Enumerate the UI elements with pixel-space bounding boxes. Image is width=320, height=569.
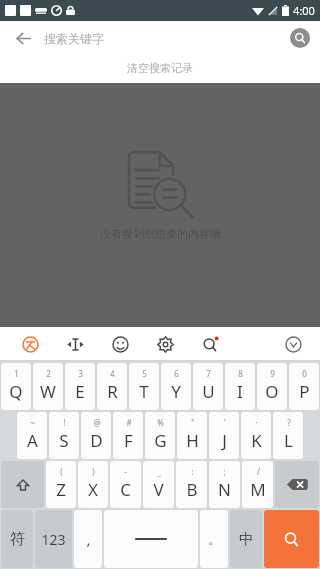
staticText: : [191,466,194,477]
button[interactable]: - [110,461,141,508]
button[interactable]: 8 [225,363,255,410]
button[interactable]: ~ [17,412,47,459]
button[interactable]: % [145,412,175,459]
staticText: " [191,417,195,428]
staticText: ) [92,466,95,477]
button[interactable]: 4 [97,363,127,410]
staticText: / [257,466,260,477]
button[interactable]: 搜索关键字 [44,21,290,55]
button[interactable]: ' [209,412,239,459]
staticText: L [284,429,293,452]
staticText: 7 [206,368,211,379]
staticText: 9 [270,368,275,379]
staticText: 。 [208,531,221,547]
staticText: ' [224,417,226,428]
staticText: X [88,478,98,501]
button[interactable]: / [242,461,273,508]
button[interactable]: ( [46,461,76,508]
staticText: Q [9,380,23,403]
staticText: O [265,380,279,403]
staticText: 没有搜到您想要的内容哦 [100,227,221,241]
staticText: 4:00 [293,3,315,18]
button[interactable]: Backspace [275,461,319,508]
button[interactable]: ) [78,461,108,508]
staticText: ( [60,466,63,477]
staticText: ? [287,417,291,428]
button[interactable]: ? [273,412,303,459]
staticText: K [251,429,262,452]
button[interactable]: Emoji [108,332,132,356]
staticText: E [75,380,85,403]
button[interactable]: Input method [18,332,42,356]
button[interactable]: · [241,412,271,459]
staticText: M [250,478,266,501]
staticText: A [27,429,38,452]
staticText: ~ [30,417,35,428]
staticText: % [157,417,164,428]
button[interactable]: 清空搜索记录 [0,55,320,81]
button[interactable]: 2 [33,363,63,410]
staticText: 3 [78,368,83,379]
button[interactable]: 6 [161,363,191,410]
staticText: Y [171,380,181,403]
button[interactable]: 符 [1,510,33,568]
button[interactable]: Hide keyboard [280,331,306,357]
button[interactable]: 3 [65,363,95,410]
staticText: 搜索关键字 [44,31,104,46]
button[interactable]: Search [290,28,310,48]
staticText: # [126,417,132,428]
staticText: 8 [238,368,243,379]
staticText: P [299,380,310,403]
staticText: T [139,380,149,403]
staticText: 1 [14,368,19,379]
button[interactable]: 1 [1,363,31,410]
staticText: C [120,478,131,501]
button[interactable]: Search [264,510,319,568]
button[interactable]: : [176,461,207,508]
staticText: ; [223,466,226,477]
staticText: V [153,478,164,501]
button[interactable]: , [74,510,102,568]
button[interactable]: Search [198,332,222,356]
staticText: _ [157,466,161,477]
staticText: I [237,380,243,403]
button[interactable]: # [113,412,143,459]
staticText: 清空搜索记录 [127,61,193,75]
staticText: G [154,429,167,452]
button[interactable]: @ [81,412,111,459]
staticText: R [107,380,118,403]
staticText: 中 [239,530,254,549]
staticText: F [124,429,133,452]
staticText: , [86,529,91,549]
staticText: H [186,429,199,452]
button[interactable]: 中 [230,510,262,568]
button[interactable]: 。 [200,510,228,568]
button[interactable]: 7 [193,363,223,410]
staticText: - [124,466,127,477]
button[interactable]: 9 [257,363,287,410]
button[interactable]: Settings [153,332,177,356]
staticText: D [90,429,103,452]
button[interactable]: 123 [35,510,72,568]
staticText: B [186,478,198,501]
staticText: S [59,429,69,452]
button[interactable]: Cursor [63,332,87,356]
button[interactable]: 5 [129,363,159,410]
staticText: 4 [110,368,115,379]
staticText: · [255,417,258,428]
staticText: W [40,380,56,403]
button[interactable]: Shift [1,461,44,508]
staticText: 6 [174,368,179,379]
button[interactable]: 0 [289,363,319,410]
button[interactable]: Space [104,510,198,568]
staticText: ! [63,417,66,428]
button[interactable]: " [177,412,207,459]
button[interactable]: ; [209,461,240,508]
button[interactable]: ! [49,412,79,459]
button[interactable]: _ [143,461,174,508]
button[interactable]: Back [10,25,36,51]
staticText: 2 [46,368,51,379]
staticText: J [222,429,227,452]
staticText: 符 [10,530,25,549]
staticText: 0 [302,368,307,379]
